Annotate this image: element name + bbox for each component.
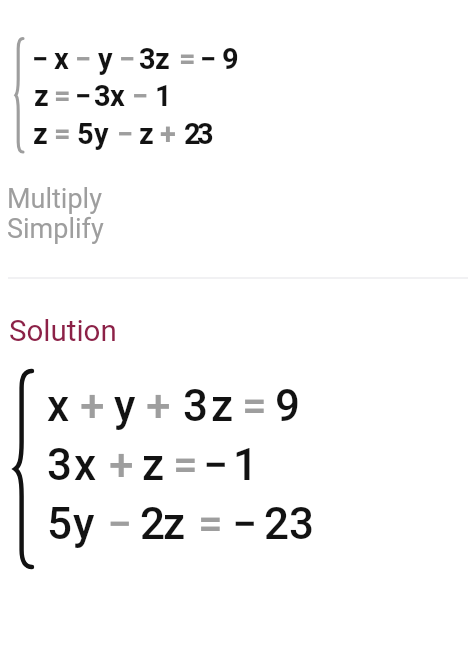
staticText: z (33, 117, 48, 151)
staticText: Multiply (7, 183, 102, 215)
staticText: y (98, 42, 113, 76)
staticText: − (107, 498, 132, 550)
staticText: − (117, 117, 134, 151)
staticText: y (94, 117, 109, 151)
button[interactable]: Multiply (7, 183, 102, 215)
staticText: = (54, 79, 71, 113)
staticText: y (73, 498, 95, 550)
staticText: 3 (139, 42, 156, 76)
staticText: 23 (264, 498, 315, 550)
staticText: + (160, 117, 176, 151)
staticText: = (54, 117, 71, 151)
staticText: z (139, 117, 154, 151)
staticText: − (75, 42, 92, 76)
staticText: x (110, 79, 125, 113)
button[interactable]: Solution (9, 314, 117, 349)
staticText: z (142, 439, 165, 491)
staticText: 1 (233, 439, 259, 491)
staticText: − (200, 42, 217, 76)
staticText: 3 (183, 380, 209, 432)
staticText: z (211, 380, 234, 432)
staticText: 9 (275, 380, 301, 432)
staticText: y (114, 380, 136, 432)
staticText: − (75, 79, 92, 113)
staticText: = (242, 380, 267, 432)
staticText: Solution (9, 314, 117, 349)
staticText: = (198, 498, 223, 550)
staticText: + (146, 380, 171, 432)
staticText: 1 (155, 79, 172, 113)
staticText: = (173, 439, 198, 491)
staticText: + (80, 380, 105, 432)
staticText: + (109, 439, 134, 491)
staticText: 5 (77, 117, 94, 151)
staticText: 5 (47, 498, 73, 550)
staticText: z (34, 79, 49, 113)
staticText: − (32, 42, 49, 76)
staticText: x (74, 439, 97, 491)
staticText: 3 (94, 79, 111, 113)
staticText: z (163, 498, 186, 550)
staticText: 9 (222, 42, 239, 76)
staticText: 2 (184, 117, 201, 151)
staticText: 2 (140, 498, 166, 550)
staticText: Simplify (7, 213, 104, 245)
staticText: z (155, 42, 170, 76)
staticText: − (132, 79, 149, 113)
staticText: 3 (47, 439, 73, 491)
staticText: − (119, 42, 136, 76)
button[interactable]: Simplify (7, 213, 104, 245)
staticText: 3 (197, 117, 214, 151)
staticText: = (179, 42, 196, 76)
staticText: − (203, 439, 228, 491)
staticText: x (54, 42, 69, 76)
staticText: − (232, 498, 257, 550)
staticText: x (47, 380, 70, 432)
